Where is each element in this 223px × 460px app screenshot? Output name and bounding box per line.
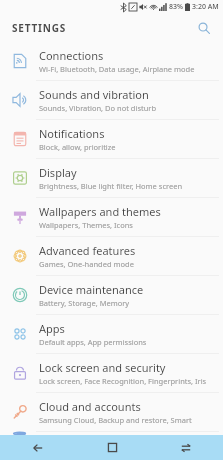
staticText: Games, One-handed mode xyxy=(39,259,134,269)
staticText: Wi-Fi, Bluetooth, Data usage, Airplane m… xyxy=(39,64,195,74)
button[interactable]: Wallpapers and themes xyxy=(0,198,223,237)
button[interactable]: Display xyxy=(0,159,223,198)
staticText: Device maintenance xyxy=(39,282,144,297)
button[interactable]: Recents xyxy=(149,435,223,460)
button[interactable]: Google xyxy=(0,432,223,435)
staticText: Brightness, Blue light filter, Home scre… xyxy=(39,181,183,191)
button[interactable]: Notifications xyxy=(0,120,223,159)
button[interactable]: Back xyxy=(0,435,75,460)
staticText: Wallpapers, Themes, Icons xyxy=(39,220,133,230)
button[interactable]: Search xyxy=(193,17,215,39)
staticText: Block, allow, prioritize xyxy=(39,142,116,152)
staticText: Lock screen and security xyxy=(39,360,166,375)
button[interactable]: Advanced features xyxy=(0,237,223,276)
staticText: Default apps, App permissions xyxy=(39,337,147,347)
staticText: Display xyxy=(39,165,77,180)
staticText: Advanced features xyxy=(39,243,136,258)
staticText: Sounds, Vibration, Do not disturb xyxy=(39,103,157,113)
staticText: Sounds and vibration xyxy=(39,87,149,102)
staticText: Battery, Storage, Memory xyxy=(39,298,130,308)
staticText: Apps xyxy=(39,321,65,336)
button[interactable]: Apps xyxy=(0,315,223,354)
staticText: Wallpapers and themes xyxy=(39,204,161,219)
button[interactable]: Home xyxy=(75,435,149,460)
staticText: Lock screen, Face Recognition, Fingerpri… xyxy=(39,376,207,386)
staticText: SETTINGS xyxy=(12,21,67,35)
staticText: Notifications xyxy=(39,126,105,141)
button[interactable]: Sounds and vibration xyxy=(0,81,223,120)
staticText: 3:20 AM xyxy=(192,2,219,12)
button[interactable]: Device maintenance xyxy=(0,276,223,315)
staticText: Connections xyxy=(39,48,104,63)
button[interactable]: Connections xyxy=(0,42,223,81)
staticText: Samsung Cloud, Backup and restore, Smart… xyxy=(39,415,215,425)
staticText: 83% xyxy=(169,2,183,12)
button[interactable]: Lock screen and security xyxy=(0,354,223,393)
staticText: Cloud and accounts xyxy=(39,399,141,414)
button[interactable]: Cloud and accounts xyxy=(0,393,223,432)
